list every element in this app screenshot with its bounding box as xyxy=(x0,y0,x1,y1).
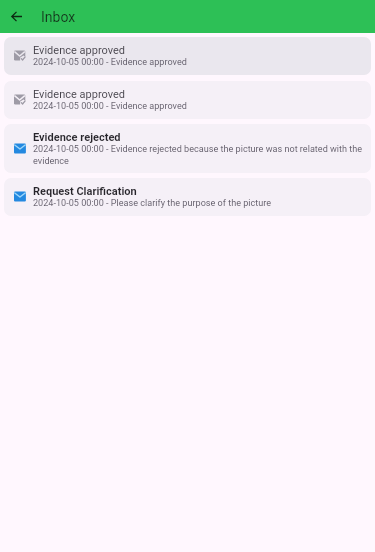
staticText: Request Clarification xyxy=(33,185,137,198)
staticText: 2024-10-05 00:00 - Evidence approved xyxy=(33,101,187,112)
button[interactable]: Evidence approved xyxy=(4,81,371,119)
button[interactable]: Evidence rejected xyxy=(4,124,371,173)
button[interactable]: Request Clarification xyxy=(4,178,371,216)
button[interactable]: Back xyxy=(4,5,28,29)
staticText: Evidence rejected xyxy=(33,131,121,144)
staticText: 2024-10-05 00:00 - Evidence approved xyxy=(33,57,187,68)
staticText: Evidence approved xyxy=(33,88,125,101)
staticText: 2024-10-05 00:00 - Please clarify the pu… xyxy=(33,198,272,209)
staticText: Evidence approved xyxy=(33,44,125,57)
staticText: 2024-10-05 00:00 - Evidence rejected bec… xyxy=(33,144,363,166)
button[interactable]: Evidence approved xyxy=(4,37,371,75)
staticText: Inbox xyxy=(41,9,76,25)
